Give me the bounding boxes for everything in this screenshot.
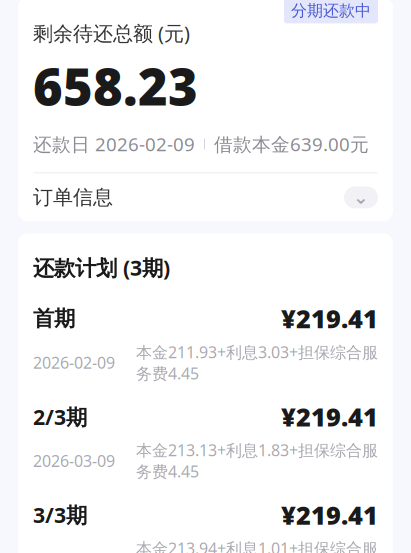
staticText: 2/3期 <box>33 402 87 431</box>
staticText: 还款日 2026-02-09 <box>33 132 195 156</box>
button[interactable]: 3/3期 <box>33 482 378 553</box>
staticText: 658.23 <box>33 52 198 120</box>
staticText: 2026-02-09 <box>33 352 115 373</box>
staticText: 3/3期 <box>33 501 87 529</box>
staticText: ¥219.41 <box>281 498 378 532</box>
button[interactable]: 首期 <box>33 286 378 384</box>
staticText: ¥219.41 <box>281 400 378 433</box>
staticText: 分期还款中 <box>291 1 371 20</box>
staticText: 订单信息 <box>33 185 113 210</box>
staticText: 本金211.93+利息3.03+担保综合服务费4.45 <box>136 341 378 384</box>
button[interactable]: 订单信息 <box>18 173 393 221</box>
staticText: 借款本金639.00元 <box>214 132 369 156</box>
staticText: 本金213.13+利息1.83+担保综合服务费4.45 <box>136 439 378 482</box>
button[interactable]: 2/3期 <box>33 384 378 482</box>
staticText: ¥219.41 <box>281 302 378 335</box>
staticText: 本金213.94+利息1.01+担保综合服务费4.46 <box>136 538 378 553</box>
staticText: ⌄ <box>353 187 369 208</box>
staticText: 首期 <box>33 305 75 332</box>
staticText: 2026-03-09 <box>33 450 115 471</box>
staticText: 还款计划 (3期) <box>33 253 170 282</box>
staticText: 剩余待还总额 (元) <box>33 20 190 46</box>
